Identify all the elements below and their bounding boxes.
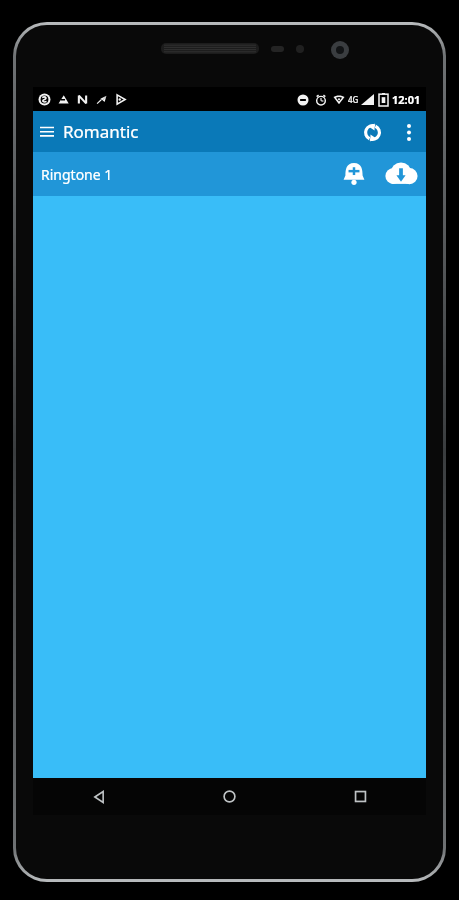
button[interactable]: Back	[33, 778, 164, 815]
button[interactable]: Recent apps	[295, 778, 426, 815]
button[interactable]: Set as ringtone	[332, 152, 376, 196]
button[interactable]: Home	[164, 778, 295, 815]
staticText: 4G	[348, 94, 359, 105]
staticText: Ringtone 1	[41, 165, 332, 184]
button[interactable]: Download	[376, 152, 426, 196]
button[interactable]: Refresh	[352, 112, 392, 152]
button[interactable]: Ringtone 1	[33, 152, 426, 196]
button[interactable]: Open navigation menu	[33, 114, 147, 149]
other: Open navigation menu	[40, 125, 54, 139]
staticText: 12:01	[392, 92, 421, 107]
staticText: Romantic	[63, 120, 139, 143]
button[interactable]: More options	[392, 115, 426, 149]
